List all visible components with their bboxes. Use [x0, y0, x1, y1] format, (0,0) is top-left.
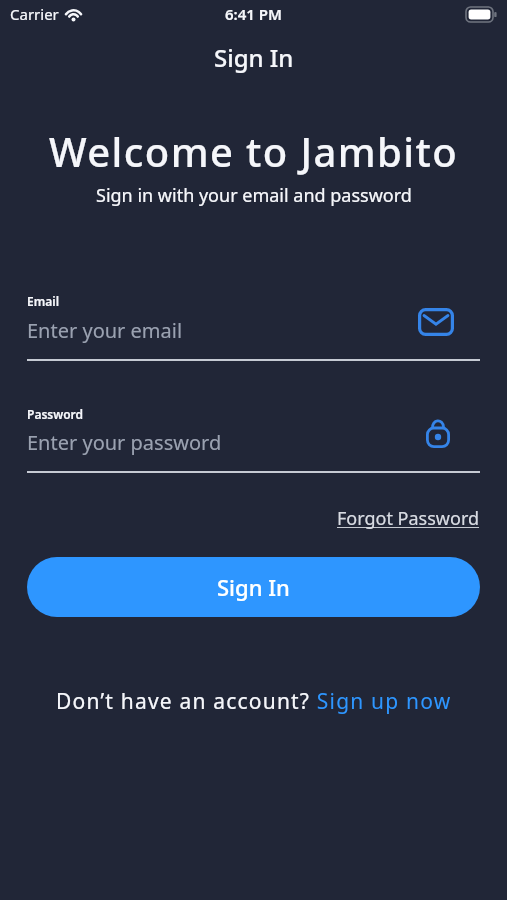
- button[interactable]: Email: [27, 293, 480, 361]
- button[interactable]: Password: [27, 406, 480, 472]
- button[interactable]: [418, 308, 454, 336]
- staticText: Enter your email: [27, 317, 183, 344]
- button[interactable]: Don’t have an account? Sign up now: [56, 687, 452, 716]
- staticText: Sign In: [214, 41, 294, 74]
- staticText: Carrier: [10, 4, 59, 24]
- button[interactable]: Forgot Password: [337, 506, 480, 531]
- staticText: Enter your password: [27, 429, 222, 456]
- staticText: Email: [27, 293, 60, 309]
- staticText: Sign In: [217, 572, 290, 602]
- staticText: Welcome to Jambito: [49, 124, 458, 178]
- staticText: Sign in with your email and password: [96, 183, 412, 208]
- staticText: 6:41 PM: [225, 4, 282, 24]
- button[interactable]: Sign In: [27, 557, 480, 617]
- button[interactable]: [426, 419, 450, 448]
- staticText: Password: [27, 406, 84, 422]
